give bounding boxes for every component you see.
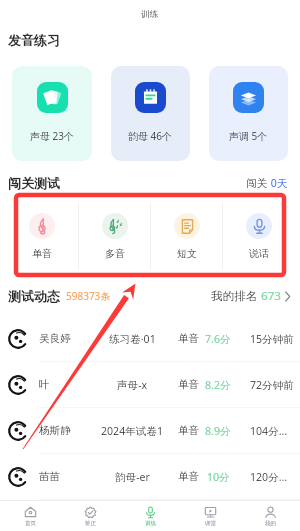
button[interactable]: 吴良婷 — [0, 316, 300, 361]
button[interactable]: 短文 — [151, 200, 222, 273]
staticText: 598373条 — [66, 289, 111, 303]
button[interactable]: 叶 — [0, 362, 300, 407]
staticText: 10分 — [207, 470, 230, 484]
staticText: 测试动态 — [8, 288, 60, 304]
staticText: 闯关 — [246, 177, 268, 190]
staticText: 矫正 — [85, 520, 96, 527]
staticText: 单音 — [178, 378, 200, 391]
button[interactable]: 声母 23个 — [12, 66, 92, 161]
button[interactable]: 杨斯静 — [0, 408, 300, 453]
staticText: 我的排名 — [211, 288, 261, 304]
staticText: 多音 — [105, 247, 125, 260]
staticText: 104分… — [250, 424, 288, 438]
staticText: 吴良婷 — [39, 332, 71, 345]
staticText: 声调 5个 — [229, 129, 268, 143]
staticText: 单音 — [178, 424, 200, 437]
staticText: 苗苗 — [39, 470, 61, 483]
staticText: 练习卷·01 — [109, 332, 156, 346]
staticText: 韵母-er — [115, 470, 150, 484]
button[interactable]: 说话 — [223, 200, 294, 273]
staticText: 说话 — [249, 247, 269, 260]
staticText: 72分钟前 — [250, 378, 294, 392]
staticText: 我的 — [265, 520, 276, 527]
button[interactable]: 课堂 — [180, 501, 240, 531]
button[interactable]: 我的排名 — [211, 288, 290, 304]
button[interactable]: 多音 — [79, 200, 150, 273]
staticText: 8.9分 — [205, 424, 231, 438]
button[interactable]: 矫正 — [60, 501, 120, 531]
staticText: 声母 23个 — [30, 129, 75, 143]
staticText: 首页 — [25, 520, 36, 527]
staticText: 7.6分 — [205, 332, 231, 346]
staticText: 课堂 — [205, 520, 216, 527]
staticText: 0天 — [268, 176, 288, 190]
button[interactable]: 单音 — [6, 200, 78, 273]
button[interactable]: 训练 — [120, 501, 180, 531]
staticText: 声母-x — [117, 378, 148, 392]
button[interactable]: 韵母 46个 — [111, 66, 190, 161]
button[interactable]: 苗苗 — [0, 454, 300, 499]
staticText: 训练 — [145, 520, 156, 527]
staticText: 韵母 46个 — [128, 129, 173, 143]
staticText: 单音 — [178, 470, 200, 483]
staticText: 673 — [261, 288, 281, 304]
staticText: 闯关测试 — [8, 175, 60, 191]
staticText: 叶 — [39, 378, 50, 391]
button[interactable]: 首页 — [0, 501, 60, 531]
staticText: 120分… — [250, 470, 288, 484]
staticText: 15分钟前 — [250, 332, 294, 346]
staticText: 8.2分 — [205, 378, 231, 392]
staticText: 训练 — [141, 9, 159, 20]
staticText: 短文 — [177, 247, 197, 260]
button[interactable]: 闯关 — [246, 176, 288, 190]
staticText: 单音 — [32, 247, 52, 260]
staticText: 发音练习 — [8, 32, 60, 48]
staticText: 2024年试卷1 — [101, 424, 164, 438]
staticText: 单音 — [178, 332, 200, 345]
staticText: 杨斯静 — [39, 424, 71, 437]
button[interactable]: 我的 — [240, 501, 300, 531]
button[interactable]: 声调 5个 — [209, 66, 288, 161]
